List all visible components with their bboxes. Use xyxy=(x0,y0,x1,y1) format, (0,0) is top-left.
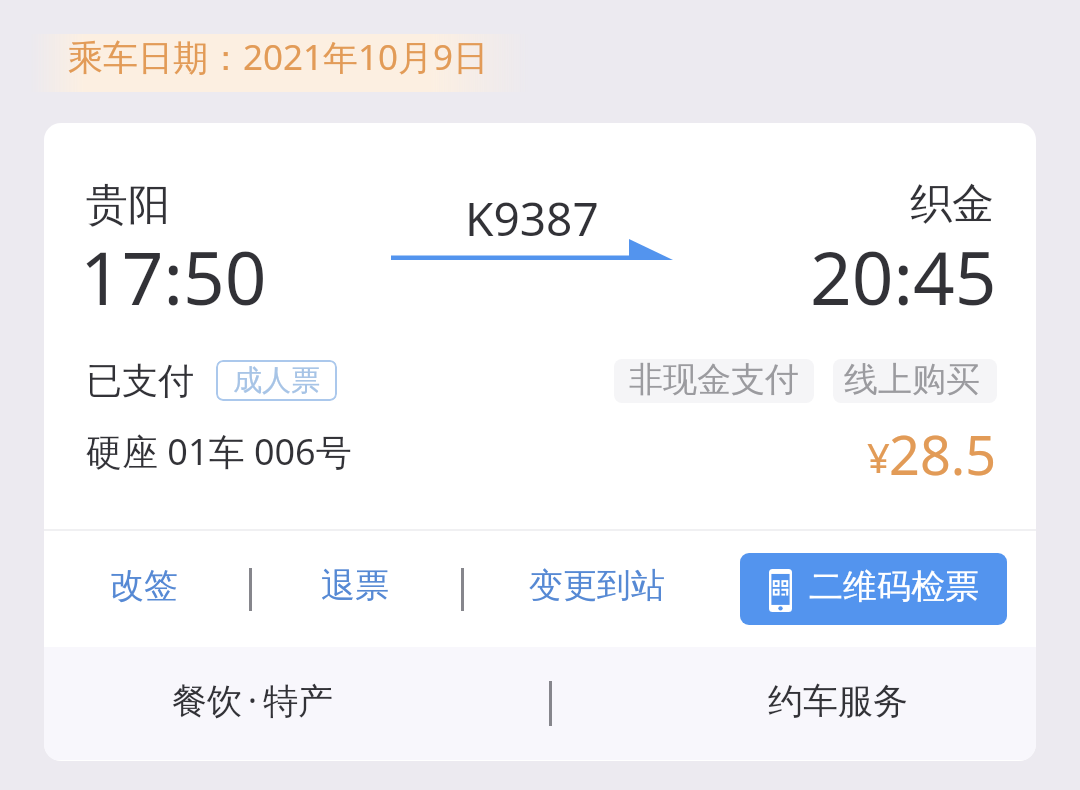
button[interactable]: 成人票 xyxy=(216,360,337,401)
staticText: ¥ xyxy=(867,430,890,484)
button[interactable]: 餐饮 · 特产 xyxy=(148,647,358,760)
staticText: 乘车日期：2021年10月9日 xyxy=(68,33,489,81)
button[interactable]: 约车服务 xyxy=(744,647,932,760)
staticText: 约车服务 xyxy=(768,679,908,723)
button[interactable]: QR code ticket check xyxy=(740,553,1007,625)
staticText: 28.5 xyxy=(889,417,997,491)
button[interactable]: 退票 xyxy=(300,529,410,641)
staticText: 改签 xyxy=(110,564,178,607)
staticText: 已支付 xyxy=(86,358,194,403)
button[interactable]: 变更到站 xyxy=(508,529,686,641)
other: QR code ticket check xyxy=(769,569,792,612)
staticText: 二维码检票 xyxy=(809,565,979,608)
staticText: 变更到站 xyxy=(529,564,665,607)
staticText: 退票 xyxy=(321,564,389,607)
staticText: 线上购买 xyxy=(844,359,980,401)
staticText: K9387 xyxy=(465,187,599,250)
staticText: 织金 xyxy=(910,178,994,231)
staticText: 17:50 xyxy=(80,227,267,326)
staticText: 餐饮 · 特产 xyxy=(172,676,334,724)
staticText: 成人票 xyxy=(233,362,320,399)
staticText: 贵阳 xyxy=(86,179,170,232)
staticText: 20:45 xyxy=(810,227,997,326)
button[interactable]: 改签 xyxy=(89,529,199,641)
staticText: 硬座 01车 006号 xyxy=(86,427,352,476)
staticText: 非现金支付 xyxy=(629,359,799,401)
